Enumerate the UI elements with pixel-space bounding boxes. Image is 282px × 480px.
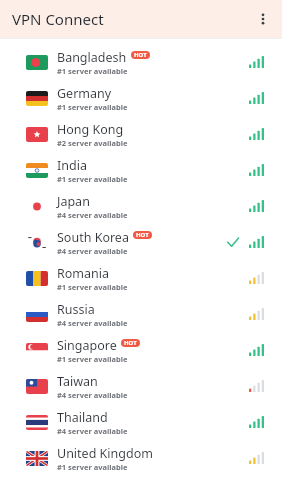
- staticText: #1 server available: [57, 462, 128, 472]
- button[interactable]: Taiwan: [0, 368, 282, 404]
- button[interactable]: South Korea: [0, 224, 282, 260]
- button[interactable]: Singapore: [0, 332, 282, 368]
- staticText: HOT: [136, 231, 149, 239]
- staticText: #4 server available: [57, 246, 128, 256]
- staticText: Hong Kong: [57, 121, 124, 138]
- button[interactable]: Hong Kong: [0, 116, 282, 152]
- staticText: Russia: [57, 301, 95, 318]
- staticText: Germany: [57, 85, 112, 102]
- staticText: #1 server available: [57, 282, 128, 292]
- button[interactable]: Japan: [0, 188, 282, 224]
- staticText: Thailand: [57, 409, 108, 426]
- staticText: #4 server available: [57, 318, 128, 328]
- staticText: HOT: [134, 51, 147, 59]
- button[interactable]: India: [0, 152, 282, 188]
- staticText: #4 server available: [57, 210, 128, 220]
- button[interactable]: Thailand: [0, 404, 282, 440]
- staticText: #2 server available: [57, 138, 128, 148]
- button[interactable]: More options: [250, 6, 276, 32]
- staticText: #4 server available: [57, 426, 128, 436]
- staticText: HOT: [124, 339, 137, 347]
- staticText: #1 server available: [57, 102, 128, 112]
- staticText: South Korea: [57, 229, 129, 246]
- button[interactable]: Bangladesh: [0, 44, 282, 80]
- staticText: Romania: [57, 265, 110, 282]
- button[interactable]: Germany: [0, 80, 282, 116]
- staticText: Bangladesh: [57, 49, 127, 66]
- staticText: Singapore: [57, 337, 117, 354]
- staticText: #1 server available: [57, 354, 128, 364]
- button[interactable]: Russia: [0, 296, 282, 332]
- staticText: #4 server available: [57, 390, 128, 400]
- button[interactable]: United Kingdom: [0, 440, 282, 476]
- staticText: Taiwan: [57, 373, 98, 390]
- staticText: VPN Connect: [12, 9, 104, 29]
- staticText: Japan: [57, 193, 90, 210]
- staticText: #1 server available: [57, 66, 128, 76]
- staticText: United Kingdom: [57, 445, 153, 462]
- button[interactable]: Romania: [0, 260, 282, 296]
- staticText: #1 server available: [57, 174, 128, 184]
- staticText: India: [57, 157, 87, 174]
